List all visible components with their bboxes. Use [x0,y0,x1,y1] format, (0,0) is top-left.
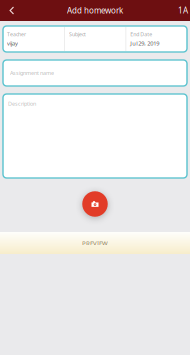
staticText: Subject [69,31,86,38]
staticText: Add homework [67,5,123,16]
staticText: 1A [178,5,188,16]
staticText: vijay [7,39,18,47]
staticText: Description [8,100,36,107]
button[interactable]: PREVIEW [0,232,190,254]
staticText: PREVIEW [82,239,108,247]
staticText: Teacher [7,31,26,38]
staticText: End Date [130,31,152,38]
button[interactable]: Add photo [80,189,110,219]
button[interactable]: Back [0,0,24,21]
staticText: Jul 29, 2019 [130,39,159,47]
staticText: Assignment name [10,69,54,77]
